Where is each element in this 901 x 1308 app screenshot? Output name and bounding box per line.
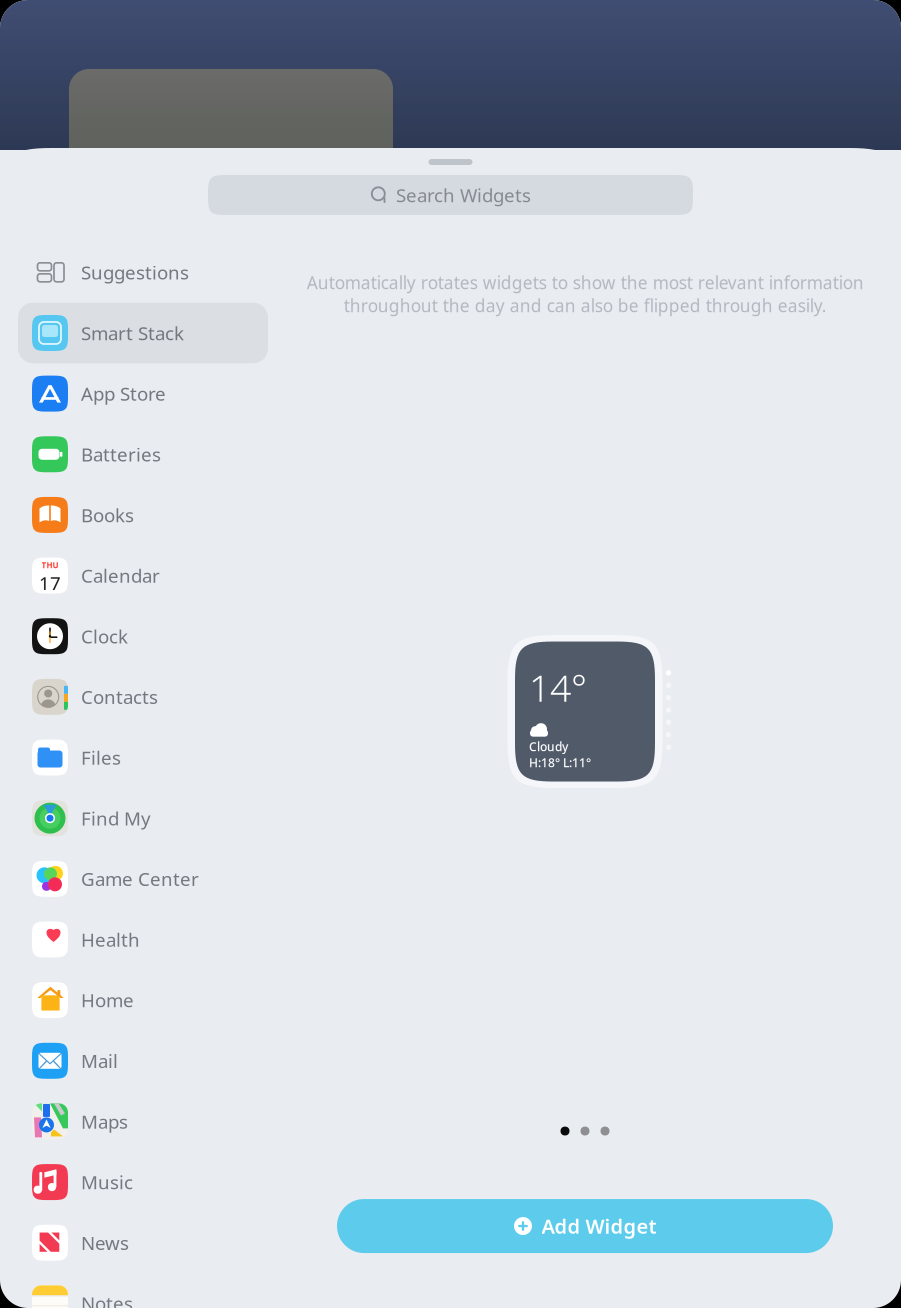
button[interactable]: Home <box>18 970 268 1030</box>
button[interactable]: THU <box>18 545 268 606</box>
staticText: Mail <box>81 1048 118 1073</box>
staticText: Automatically rotates widgets to show th… <box>306 271 863 317</box>
button[interactable]: News <box>18 1212 268 1273</box>
staticText: Books <box>81 502 134 527</box>
staticText: Cloudy <box>529 739 568 755</box>
button[interactable]: Suggestions <box>18 242 268 303</box>
button[interactable]: App Store <box>18 363 268 424</box>
button[interactable]: Game Center <box>18 848 268 909</box>
button[interactable]: Contacts <box>18 666 268 727</box>
button[interactable]: Health <box>18 909 268 970</box>
button[interactable]: Notes <box>18 1273 268 1308</box>
button[interactable]: Add Widget <box>337 1199 833 1253</box>
button[interactable]: Books <box>18 485 268 545</box>
staticText: THU <box>41 560 58 570</box>
staticText: Clock <box>81 624 128 649</box>
button[interactable]: Music <box>18 1152 268 1212</box>
staticText: Suggestions <box>81 260 189 285</box>
staticText: App Store <box>81 381 166 406</box>
staticText: Health <box>81 927 140 952</box>
button[interactable]: Files <box>18 727 268 788</box>
staticText: Batteries <box>81 442 161 467</box>
button[interactable]: Search Widgets <box>208 175 693 215</box>
staticText: Calendar <box>81 563 160 588</box>
staticText: Music <box>81 1170 133 1194</box>
staticText: Contacts <box>81 684 158 709</box>
staticText: 14° <box>529 662 587 712</box>
button[interactable]: Find My <box>18 788 268 848</box>
button[interactable]: Maps <box>18 1091 268 1152</box>
staticText: Search Widgets <box>396 183 531 207</box>
staticText: Notes <box>81 1291 133 1308</box>
staticText: Home <box>81 988 134 1012</box>
staticText: Add Widget <box>541 1213 656 1239</box>
staticText: Smart Stack <box>81 321 184 345</box>
staticText: Game Center <box>81 866 199 891</box>
staticText: News <box>81 1230 129 1255</box>
staticText: Files <box>81 745 121 770</box>
button[interactable]: Smart Stack <box>18 303 268 363</box>
staticText: 17 <box>39 570 61 595</box>
staticText: H:18° L:11° <box>529 755 591 770</box>
button[interactable]: Mail <box>18 1030 268 1091</box>
staticText: Maps <box>81 1109 128 1134</box>
staticText: Find My <box>81 806 151 831</box>
button[interactable]: Clock <box>18 606 268 666</box>
button[interactable]: Batteries <box>18 424 268 484</box>
